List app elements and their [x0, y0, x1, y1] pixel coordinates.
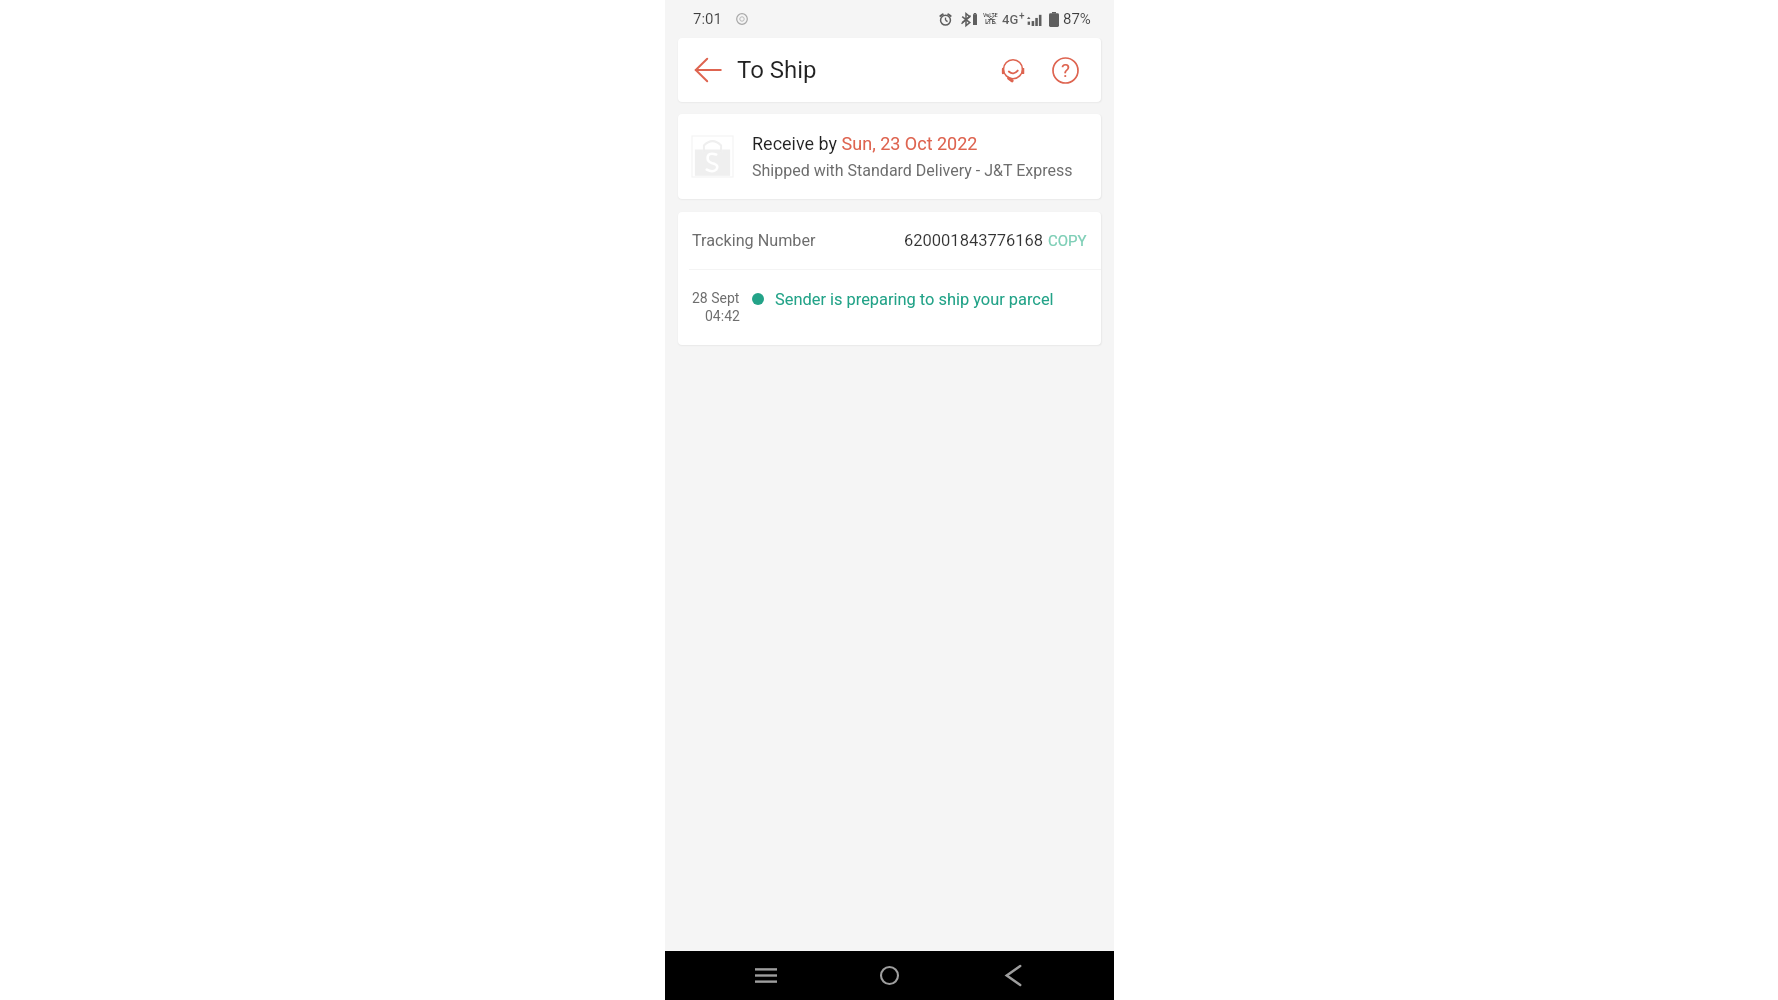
staticText: LTE — [985, 18, 996, 26]
staticText: 28 Sept — [692, 290, 740, 306]
staticText: 87% — [1063, 10, 1091, 28]
button[interactable]: Receive by Sun, 23 Oct 2022 — [678, 114, 1101, 199]
staticText: 7:01 — [693, 10, 722, 28]
button[interactable]: 28 Sept — [678, 270, 1101, 345]
staticText: 4G — [1002, 12, 1019, 27]
button[interactable]: Customer service — [991, 48, 1035, 92]
staticText: Shipped with Standard Delivery - J&T Exp… — [752, 161, 1073, 180]
staticText: COPY — [1048, 232, 1087, 250]
staticText: + — [1019, 10, 1025, 22]
staticText: Tracking Number — [692, 231, 816, 250]
staticText: Receive by Sun, 23 Oct 2022 — [752, 133, 978, 154]
button[interactable]: COPY — [1048, 232, 1087, 250]
staticText: 04:42 — [705, 308, 740, 324]
button[interactable]: Back — [951, 951, 1075, 1000]
staticText: To Ship — [737, 56, 817, 84]
button[interactable]: Back — [683, 45, 733, 95]
button[interactable]: Help — [1043, 48, 1087, 92]
staticText: VoLTE — [983, 12, 998, 18]
button[interactable]: Home — [827, 951, 951, 1000]
button[interactable]: Recent apps — [704, 951, 827, 1000]
staticText: 620001843776168 — [904, 231, 1044, 250]
staticText: Sender is preparing to ship your parcel — [775, 290, 1054, 309]
staticText: ? — [1061, 59, 1070, 81]
